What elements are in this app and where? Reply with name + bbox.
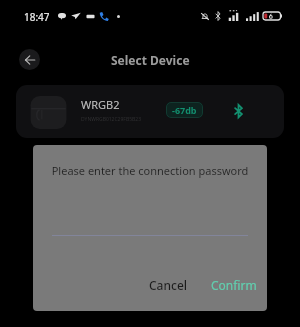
- other: Bluetooth: [232, 104, 245, 118]
- staticText: WRGB2: [81, 97, 120, 112]
- staticText: Cancel: [149, 277, 188, 293]
- staticText: 18:47: [24, 10, 50, 24]
- button[interactable]: WRGB2: [16, 85, 284, 138]
- button[interactable]: Confirm: [204, 273, 264, 297]
- staticText: Please enter the connection password: [45, 163, 255, 178]
- button[interactable]: Cancel: [142, 273, 195, 297]
- staticText: -67db: [172, 104, 197, 116]
- button[interactable]: Back: [19, 49, 40, 70]
- staticText: Confirm: [211, 277, 257, 293]
- staticText: DYNWRGB012C29FB5B23: [81, 116, 142, 123]
- staticText: Select Device: [111, 52, 190, 68]
